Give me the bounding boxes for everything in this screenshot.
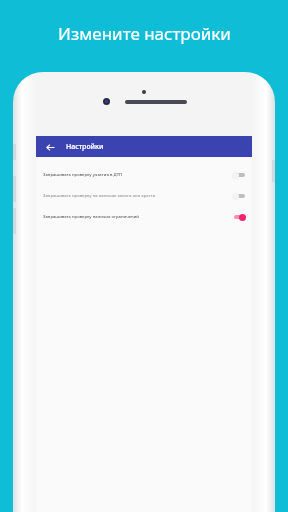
staticText: Запрашивать проверку на наличие залога и… <box>43 193 228 199</box>
button[interactable]: Запрашивать проверку участия в ДТП <box>36 169 252 181</box>
button[interactable]: Back <box>42 139 58 155</box>
staticText: Запрашивать проверку наличия ограничений <box>43 214 228 220</box>
staticText: Запрашивать проверку участия в ДТП <box>43 172 228 178</box>
staticText: Измените настройки <box>58 22 231 45</box>
button[interactable]: Запрашивать проверку на наличие залога и… <box>36 190 252 202</box>
staticText: Настройки <box>66 142 104 152</box>
button[interactable]: Запрашивать проверку наличия ограничений <box>36 211 252 223</box>
